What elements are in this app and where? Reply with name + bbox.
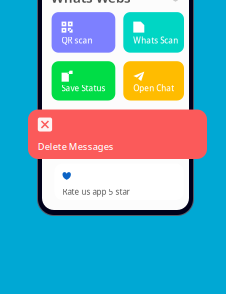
button[interactable]: Open Chat [123, 61, 184, 100]
staticText: Whats Webs [51, 0, 131, 6]
button[interactable]: QR scan [52, 12, 115, 53]
staticText: Delete Messages [38, 140, 114, 152]
button[interactable]: Rate us app 5 star [54, 164, 184, 200]
button[interactable]: Delete Messages [28, 109, 207, 159]
button[interactable]: Whats Scan [123, 12, 184, 53]
staticText: Rate us app 5 star [62, 186, 129, 197]
staticText: Whats Scan [133, 35, 178, 46]
button[interactable]: Save Status [52, 61, 115, 100]
staticText: Open Chat [133, 83, 174, 93]
staticText: Save Status [62, 83, 106, 93]
staticText: QR scan [62, 35, 93, 46]
